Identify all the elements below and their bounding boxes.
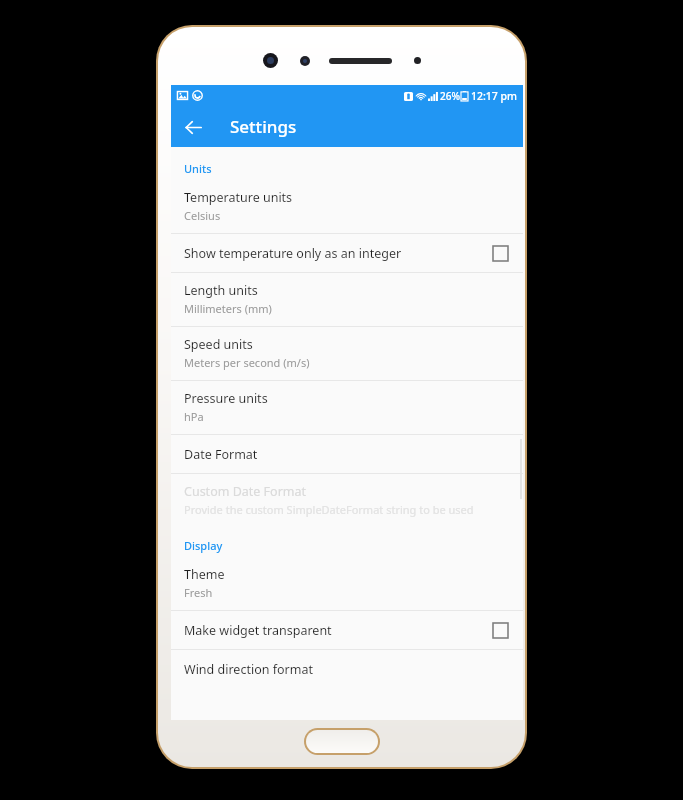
staticText: Display [184,538,223,553]
staticText: Custom Date Format [184,483,307,500]
staticText: Millimeters (mm) [184,301,272,316]
button[interactable]: Show temperature only as an integer [171,234,523,272]
staticText: 26% [440,89,460,103]
staticText: Provide the custom SimpleDateFormat stri… [184,502,474,517]
staticText: hPa [184,409,204,424]
button[interactable]: Custom Date Format [171,474,523,527]
staticText: Pressure units [184,390,268,407]
staticText: Theme [184,566,225,583]
staticText: Speed units [184,336,253,353]
staticText: Units [184,161,212,176]
button[interactable]: Date Format [171,435,523,473]
staticText: Celsius [184,208,221,223]
button[interactable]: Home [306,730,378,753]
button[interactable]: Length units [171,273,523,326]
button[interactable]: Back [176,110,210,144]
staticText: Date Format [184,446,258,463]
button[interactable]: Speed units [171,327,523,380]
staticText: Show temperature only as an integer [184,245,402,262]
button[interactable]: Pressure units [171,381,523,434]
staticText: Temperature units [184,189,293,206]
staticText: Meters per second (m/s) [184,355,310,370]
staticText: Make widget transparent [184,622,332,639]
staticText: Settings [230,115,297,138]
staticText: Wind direction format [184,661,313,678]
staticText: Fresh [184,585,213,600]
staticText: Length units [184,282,258,299]
button[interactable]: Theme [171,557,523,610]
button[interactable]: Temperature units [171,180,523,233]
staticText: 12:17 pm [471,89,518,103]
button[interactable]: Wind direction format [171,650,523,688]
button[interactable]: Make widget transparent [171,611,523,649]
